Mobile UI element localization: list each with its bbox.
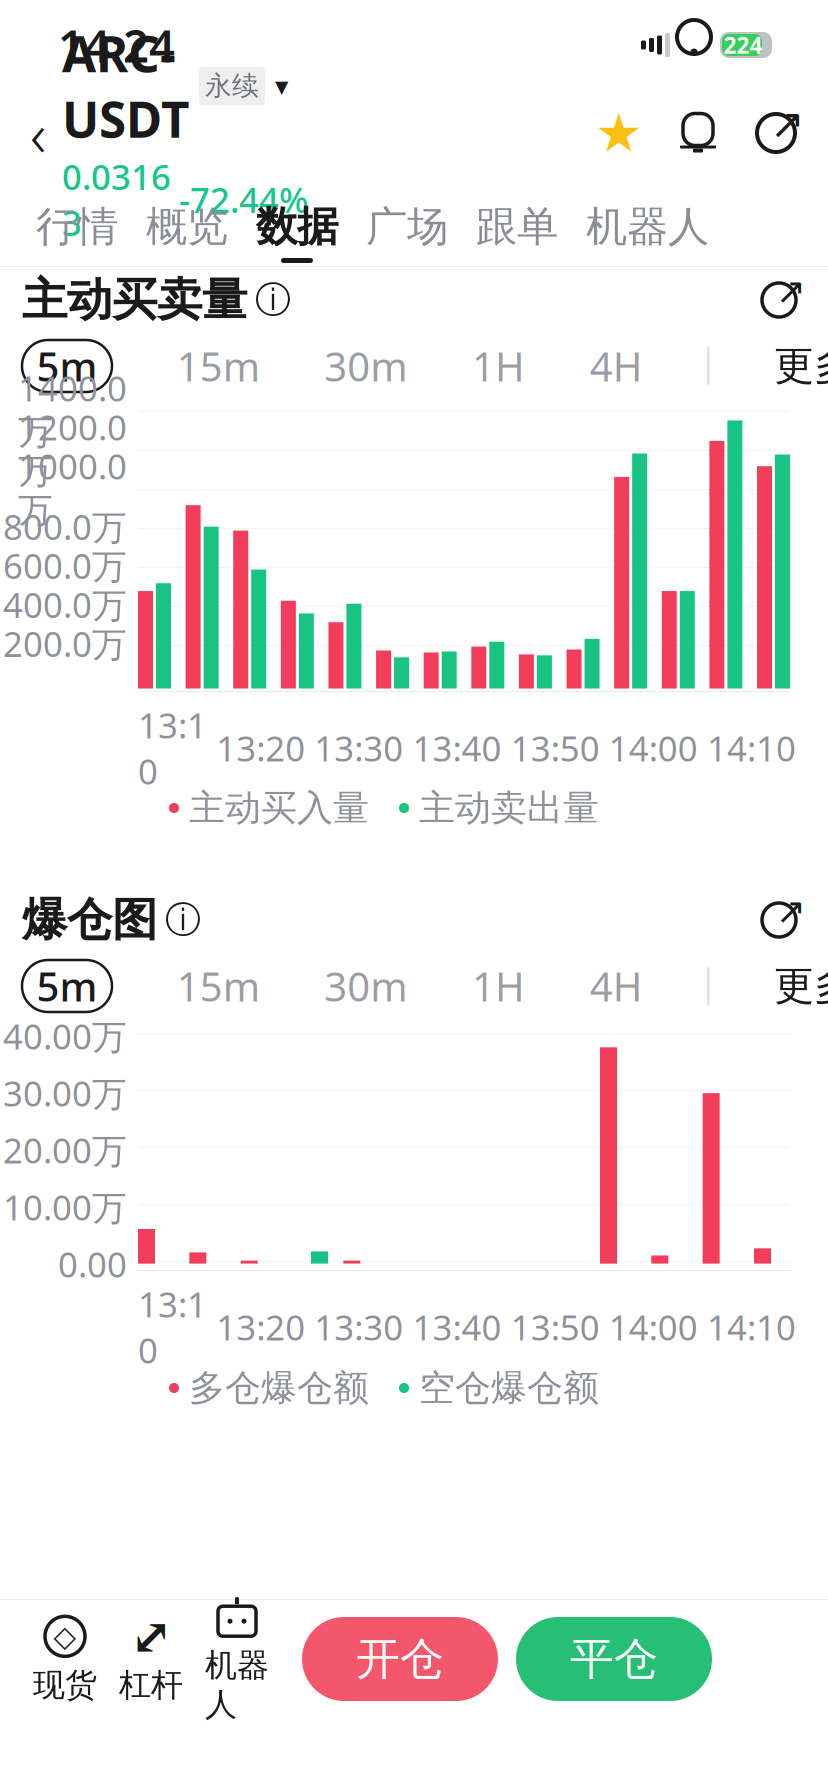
staticText: 13:30 xyxy=(314,1304,403,1350)
staticText: 更多 xyxy=(774,341,828,390)
staticText: 0.00 xyxy=(58,1241,127,1287)
staticText: -72.44% xyxy=(179,176,309,222)
staticText: 200.0万 xyxy=(3,620,127,666)
button[interactable]: Info xyxy=(255,282,291,318)
staticText: 0.03163 xyxy=(62,153,171,246)
staticText: 14:10 xyxy=(707,1304,796,1350)
staticText: 30m xyxy=(324,339,407,392)
staticText: 13:20 xyxy=(216,725,305,771)
staticText: 1000.0万 xyxy=(18,443,127,532)
staticText: 1200.0万 xyxy=(18,404,127,493)
staticText: 4H xyxy=(590,339,643,392)
button[interactable]: 广场 xyxy=(352,179,462,263)
button[interactable]: 更多 xyxy=(774,960,828,1012)
staticText: ▾ xyxy=(275,71,288,101)
staticText: 30.00万 xyxy=(3,1070,127,1116)
staticText: 14:10 xyxy=(707,725,796,771)
staticText: 13:50 xyxy=(511,725,600,771)
staticText: ⓘ xyxy=(165,898,201,942)
staticText: 现货 xyxy=(33,1665,97,1705)
button[interactable]: 5m xyxy=(22,960,112,1012)
button[interactable]: 4H xyxy=(590,340,643,392)
staticText: 数据 xyxy=(256,201,338,252)
button[interactable]: ⤢ xyxy=(108,1609,194,1709)
button[interactable]: 机器人 xyxy=(194,1609,280,1709)
staticText: 机器人 xyxy=(586,201,709,252)
button[interactable]: 机器人 xyxy=(572,179,723,263)
staticText: 13:40 xyxy=(412,1304,501,1350)
button[interactable]: Share xyxy=(754,105,798,161)
staticText: 概览 xyxy=(146,201,228,252)
staticText: 1400.0万 xyxy=(18,365,127,454)
button[interactable]: 1H xyxy=(472,960,525,1012)
button[interactable]: Share chart xyxy=(756,277,802,323)
staticText: 平仓 xyxy=(570,1632,658,1686)
staticText: ★ xyxy=(595,103,643,163)
staticText: 4H xyxy=(590,959,643,1012)
staticText: 13:40 xyxy=(412,725,501,771)
button[interactable]: 平仓 xyxy=(516,1617,712,1701)
staticText: 爆仓图 xyxy=(22,892,157,948)
staticText: 主动买卖量 xyxy=(22,272,247,328)
staticText: 14:24 xyxy=(58,15,175,75)
staticText: ◇ xyxy=(53,1620,76,1653)
staticText: 40.00万 xyxy=(3,1013,127,1059)
staticText: 1H xyxy=(472,339,525,392)
staticText: 广场 xyxy=(366,201,448,252)
staticText: 机器人 xyxy=(205,1646,269,1724)
button[interactable]: 30m xyxy=(324,960,407,1012)
staticText: 14:00 xyxy=(609,725,698,771)
staticText: ‹ xyxy=(30,92,46,174)
staticText: 1H xyxy=(472,959,525,1012)
staticText: 400.0万 xyxy=(3,581,127,627)
staticText: 15m xyxy=(177,339,260,392)
button[interactable]: Share chart xyxy=(756,897,802,943)
button[interactable]: 15m xyxy=(177,960,260,1012)
staticText: 14:00 xyxy=(609,1304,698,1350)
button[interactable]: 跟单 xyxy=(462,179,572,263)
button[interactable]: 30m xyxy=(324,340,407,392)
staticText: ⤢ xyxy=(130,1607,172,1665)
button[interactable]: 开仓 xyxy=(302,1617,498,1701)
button[interactable]: 更多 xyxy=(774,340,828,392)
staticText: 10.00万 xyxy=(3,1184,127,1230)
staticText: 主动买入量 xyxy=(189,786,369,830)
staticText: 13:50 xyxy=(511,1304,600,1350)
staticText: 主动卖出量 xyxy=(419,786,599,830)
staticText: 13:10 xyxy=(138,1281,207,1373)
staticText: 20.00万 xyxy=(3,1127,127,1173)
staticText: ↗ xyxy=(770,100,805,147)
button[interactable]: 1H xyxy=(472,340,525,392)
button[interactable]: Back xyxy=(14,98,62,168)
staticText: 224 xyxy=(723,30,762,60)
staticText: 13:30 xyxy=(314,725,403,771)
button[interactable]: ◇ xyxy=(22,1609,108,1709)
staticText: ↗ xyxy=(776,271,806,311)
button[interactable]: 数据 xyxy=(242,179,352,263)
staticText: 杠杆 xyxy=(119,1665,183,1705)
staticText: ARCUSDT xyxy=(62,20,189,151)
button[interactable]: Info xyxy=(165,902,201,938)
button[interactable]: 4H xyxy=(590,960,643,1012)
staticText: 行情 xyxy=(36,201,118,252)
staticText: 跟单 xyxy=(476,201,558,252)
staticText: 15m xyxy=(177,959,260,1012)
button[interactable]: Favorite xyxy=(596,105,642,161)
button[interactable]: Alerts xyxy=(676,105,720,161)
button[interactable]: 15m xyxy=(177,340,260,392)
staticText: ⓘ xyxy=(255,278,291,322)
staticText: 13:10 xyxy=(138,702,207,794)
staticText: 开仓 xyxy=(356,1632,444,1686)
button[interactable]: 行情 xyxy=(22,179,132,263)
button[interactable]: 概览 xyxy=(132,179,242,263)
staticText: 800.0万 xyxy=(3,503,127,549)
staticText: 5m xyxy=(36,339,97,392)
staticText: 更多 xyxy=(774,961,828,1010)
button[interactable]: 5m xyxy=(22,340,112,392)
staticText: 空仓爆仓额 xyxy=(419,1366,599,1410)
staticText: 13:20 xyxy=(216,1304,305,1350)
staticText: ↗ xyxy=(776,891,806,931)
staticText: 30m xyxy=(324,959,407,1012)
staticText: 多仓爆仓额 xyxy=(189,1366,369,1410)
staticText: 600.0万 xyxy=(3,542,127,588)
